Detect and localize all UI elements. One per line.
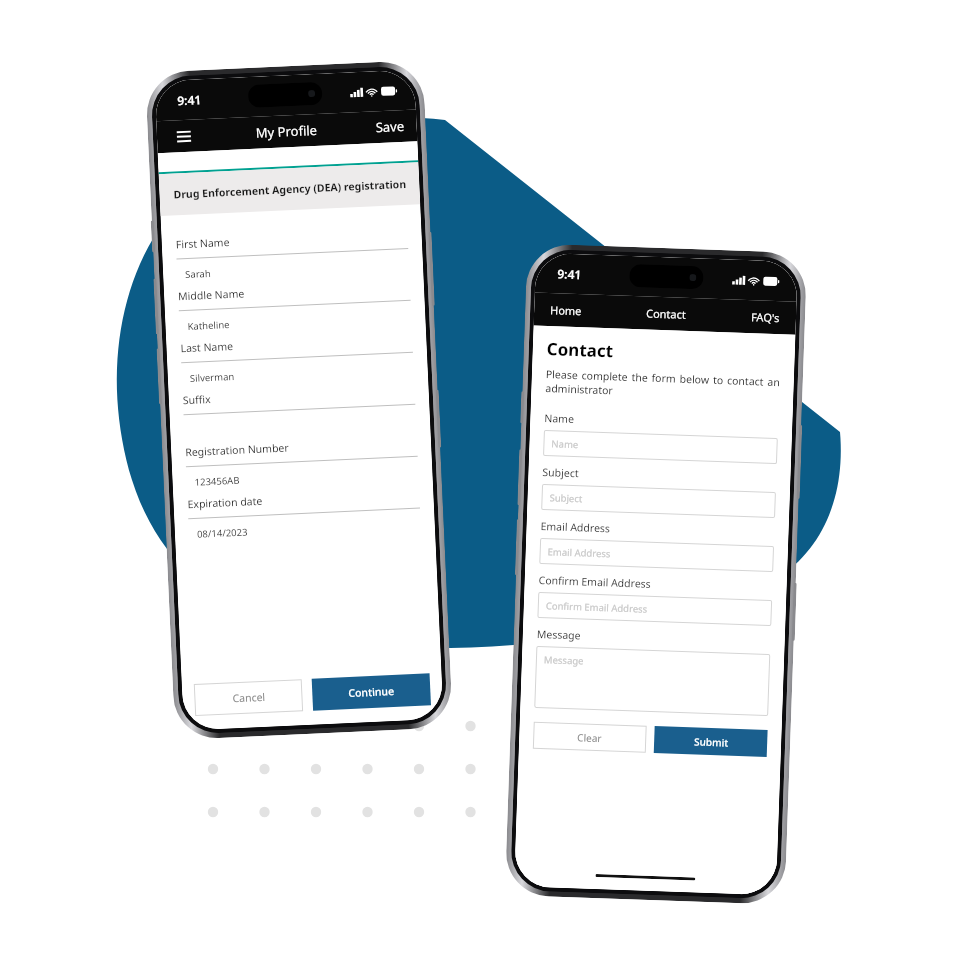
button[interactable]: Contact — [621, 296, 710, 332]
button[interactable]: Email Address — [539, 538, 774, 572]
staticText: Sarah — [185, 267, 211, 281]
staticText: Cancel — [232, 690, 266, 705]
button[interactable]: Confirm Email Address — [537, 592, 772, 626]
staticText: 123456AB — [194, 474, 240, 489]
button[interactable]: Katheline — [179, 301, 412, 341]
button[interactable] — [184, 405, 417, 445]
staticText: Home — [550, 302, 582, 318]
button[interactable]: 08/14/2023 — [188, 509, 421, 549]
button[interactable]: Home — [534, 293, 623, 329]
staticText: Last Name — [180, 339, 234, 355]
button[interactable]: Save — [363, 112, 417, 141]
staticText: 9:41 — [177, 91, 202, 108]
staticText: First Name — [175, 235, 230, 251]
staticText: FAQ's — [751, 309, 780, 325]
staticText: Katheline — [187, 318, 230, 333]
staticText: Subject — [542, 465, 580, 480]
staticText: My Profile — [255, 121, 318, 142]
staticText: Confirm Email Address — [538, 573, 652, 591]
staticText: Message — [537, 627, 581, 642]
staticText: Suffix — [183, 392, 211, 407]
staticText: Email Address — [540, 519, 611, 535]
staticText: Confirm Email Address — [546, 599, 648, 616]
button[interactable]: 123456AB — [186, 457, 419, 497]
button[interactable]: Silverman — [181, 353, 414, 393]
staticText: Registration Number — [185, 440, 289, 459]
staticText: Please complete the form below to contac… — [545, 367, 780, 403]
staticText: Contact — [546, 337, 614, 362]
button[interactable]: Message — [534, 646, 770, 716]
staticText: Drug Enforcement Agency (DEA) registrati… — [173, 177, 407, 201]
staticText: Submit — [694, 734, 728, 750]
button[interactable]: Menu — [170, 122, 197, 150]
button[interactable]: Submit — [654, 726, 768, 757]
button[interactable]: Sarah — [176, 249, 410, 289]
button[interactable]: Clear — [533, 722, 647, 753]
staticText: Save — [375, 117, 405, 136]
staticText: Subject — [549, 491, 583, 505]
staticText: Clear — [577, 730, 602, 745]
staticText: Silverman — [190, 370, 235, 385]
button[interactable]: Cancel — [194, 679, 303, 716]
staticText: Contact — [646, 305, 686, 322]
button[interactable]: FAQ's — [708, 299, 797, 335]
staticText: 08/14/2023 — [197, 525, 248, 541]
staticText: Name — [551, 437, 579, 451]
staticText: Message — [544, 653, 584, 667]
staticText: Email Address — [547, 545, 611, 560]
staticText: Name — [544, 411, 575, 426]
staticText: Continue — [348, 684, 395, 700]
staticText: 9:41 — [557, 265, 582, 282]
button[interactable]: Continue — [312, 673, 431, 711]
button[interactable]: Name — [543, 430, 778, 464]
button[interactable]: Subject — [541, 484, 776, 518]
staticText: Middle Name — [178, 286, 245, 303]
staticText: Expiration date — [187, 494, 263, 511]
